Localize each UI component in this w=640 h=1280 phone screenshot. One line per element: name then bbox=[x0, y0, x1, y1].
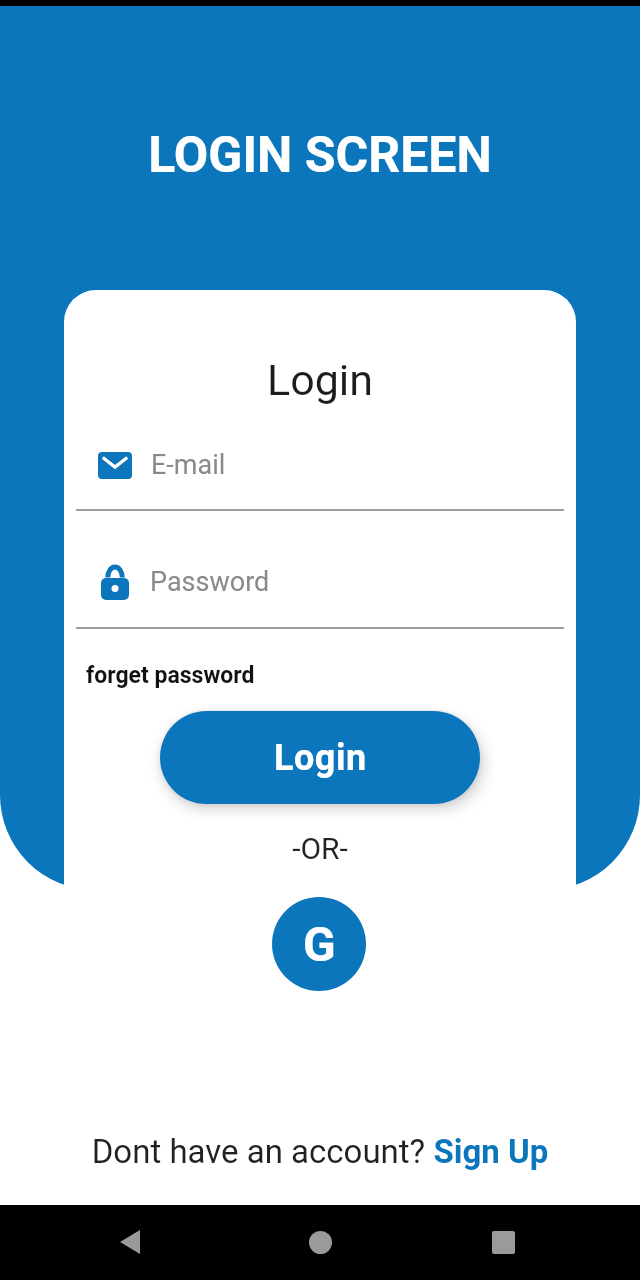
button[interactable]: Dont have an account? Sign Up bbox=[0, 1132, 640, 1171]
button[interactable]: Password bbox=[101, 562, 576, 602]
button[interactable]: forget password bbox=[86, 662, 255, 689]
staticText: Login bbox=[64, 355, 576, 405]
staticText: Login bbox=[274, 737, 367, 779]
staticText: -OR- bbox=[64, 831, 576, 866]
button[interactable]: E-mail bbox=[98, 443, 576, 487]
button[interactable] bbox=[483, 1222, 523, 1262]
staticText: E-mail bbox=[151, 449, 226, 481]
button[interactable] bbox=[110, 1222, 150, 1262]
button[interactable]: G bbox=[272, 897, 366, 991]
staticText: LOGIN SCREEN bbox=[0, 126, 640, 185]
button[interactable] bbox=[300, 1222, 340, 1262]
staticText: G bbox=[303, 916, 336, 972]
staticText: Password bbox=[150, 566, 270, 598]
button[interactable]: Login bbox=[160, 711, 480, 804]
